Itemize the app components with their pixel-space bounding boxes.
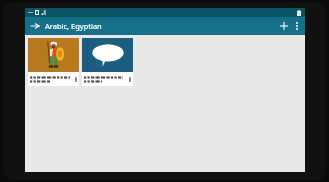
button[interactable] (82, 38, 133, 86)
button[interactable] (28, 38, 79, 86)
button[interactable]: Add (277, 19, 291, 33)
button[interactable]: Navigate up (29, 20, 41, 32)
staticText: Arabic, Egyptian (45, 21, 102, 31)
button[interactable]: More options (291, 20, 303, 32)
